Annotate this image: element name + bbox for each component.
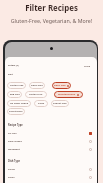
staticText: Diet <box>8 73 13 76</box>
button[interactable]: No sugar added <box>7 100 31 107</box>
button[interactable]: Peanut Free <box>51 100 69 107</box>
button[interactable]: Weeknight <box>8 146 92 152</box>
button[interactable]: Slow Cooked <box>8 138 92 144</box>
staticText: Dairy Free <box>54 84 66 87</box>
staticText: For Two <box>8 132 17 135</box>
button[interactable]: Dairy-Free <box>29 82 45 89</box>
button[interactable]: Filters (3) <box>8 64 19 67</box>
staticText: No sugar added <box>10 102 29 105</box>
staticText: Gluten Free <box>29 93 43 96</box>
staticText: Dish Type <box>8 159 21 162</box>
staticText: Salads <box>8 168 15 171</box>
button[interactable]: Mediterranean <box>54 91 83 98</box>
staticText: Egg Free <box>10 93 20 96</box>
staticText: Mediterranean <box>58 93 76 96</box>
button[interactable]: For Two <box>8 130 92 136</box>
button[interactable]: Paleo <box>34 100 48 107</box>
staticText: Gluten-Free, Vegetarian, & More! <box>0 17 103 24</box>
staticText: Filters (3) <box>8 64 19 67</box>
staticText: Gluten-Free <box>10 84 24 87</box>
staticText: Paleo <box>38 102 45 105</box>
staticText: Recipe Type <box>8 123 23 126</box>
button[interactable]: Gluten-Free <box>7 82 26 89</box>
staticText: Dairy-Free <box>31 84 43 87</box>
button[interactable]: Close <box>84 65 91 68</box>
button[interactable]: Egg Free <box>7 91 22 98</box>
staticText: Close <box>84 65 91 68</box>
button[interactable]: Soups <box>8 174 92 180</box>
button[interactable]: Dairy Free <box>52 82 71 89</box>
button[interactable]: Pescatarian <box>7 108 25 115</box>
staticText: Filter Recipes <box>0 3 103 14</box>
staticText: Soups <box>8 176 15 179</box>
staticText: Slow Cooked <box>8 140 22 143</box>
button[interactable]: Salads <box>8 166 92 172</box>
button[interactable]: Gluten Free <box>25 91 47 98</box>
staticText: Pescatarian <box>9 110 23 113</box>
staticText: Peanut Free <box>53 102 67 105</box>
staticText: Weeknight <box>8 148 20 151</box>
